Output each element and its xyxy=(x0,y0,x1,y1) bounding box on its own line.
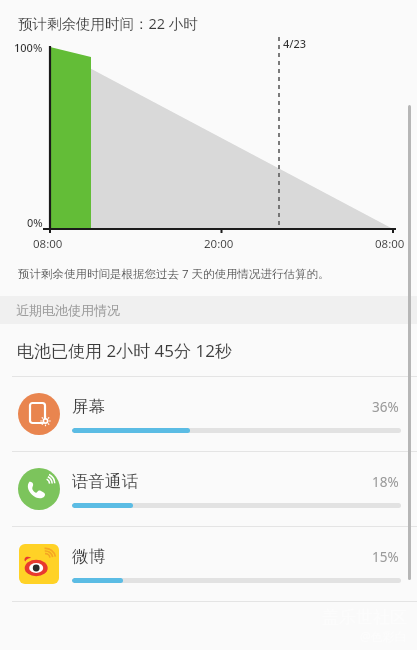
staticText: 08:00 xyxy=(375,236,405,252)
staticText: 预计剩余使用时间：22 小时 xyxy=(18,13,198,33)
staticText: 语音通话 xyxy=(72,471,372,492)
button[interactable]: Weibo xyxy=(0,527,417,601)
staticText: 近期电池使用情况 xyxy=(16,302,120,318)
other: Weibo xyxy=(19,544,59,584)
other: Voice call xyxy=(18,468,60,510)
staticText: 预计剩余使用时间是根据您过去 7 天的使用情况进行估算的。 xyxy=(18,266,330,282)
staticText: 15% xyxy=(372,548,399,566)
staticText: 4/23 xyxy=(283,36,307,51)
staticText: 电池已使用 2小时 45分 12秒 xyxy=(17,339,232,362)
button[interactable]: Voice call xyxy=(0,452,417,526)
staticText: 08:00 xyxy=(33,236,63,252)
staticText: 屏幕 xyxy=(72,396,372,417)
staticText: 20:00 xyxy=(204,236,234,252)
staticText: 18% xyxy=(372,473,399,491)
staticText: 0% xyxy=(27,215,43,230)
button[interactable]: 电池已使用 2小时 45分 12秒 xyxy=(0,324,417,376)
staticText: 100% xyxy=(14,40,43,55)
button[interactable]: Screen xyxy=(0,377,417,451)
staticText: 微博 xyxy=(72,546,372,567)
other: Screen xyxy=(18,393,60,435)
staticText: 36% xyxy=(372,398,399,416)
